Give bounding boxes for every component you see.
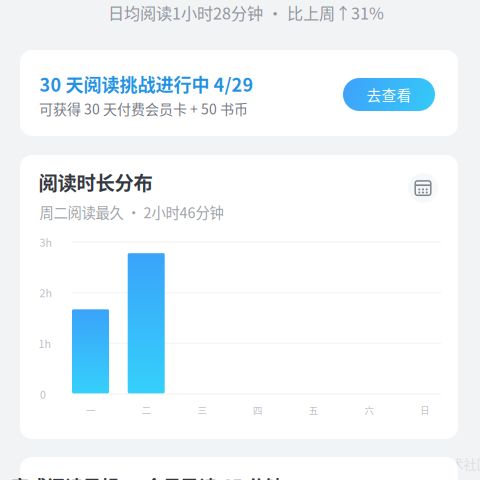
staticText: 二 <box>142 403 151 417</box>
staticText: 三 <box>197 403 206 417</box>
staticText: 30 天阅读挑战进行中 4/29 <box>39 71 253 97</box>
button[interactable]: Calendar <box>408 173 438 203</box>
staticText: 六 <box>364 403 373 417</box>
staticText: 阅读时长分布 <box>38 168 152 196</box>
staticText: 2h <box>39 285 51 300</box>
staticText: 周二阅读最久 · 2小时46分钟 <box>39 202 223 222</box>
staticText: 完成阅读目标 · 今日已读 45 分钟 <box>11 473 283 480</box>
button[interactable]: 去查看 <box>343 78 435 111</box>
staticText: 四 <box>253 403 262 417</box>
staticText: 日 <box>420 403 429 417</box>
staticText: @稀土掘金技术社区 <box>372 454 480 474</box>
staticText: 可获得 30 天付费会员卡 + 50 书币 <box>39 98 248 119</box>
staticText: 去查看 <box>366 84 411 105</box>
staticText: 一 <box>86 403 95 417</box>
staticText: 五 <box>309 403 318 417</box>
staticText: 3h <box>39 234 51 250</box>
staticText: 1h <box>38 336 50 351</box>
staticText: 0 <box>40 386 46 402</box>
staticText: 日均阅读1小时28分钟 · 比上周↑31% <box>108 1 384 24</box>
